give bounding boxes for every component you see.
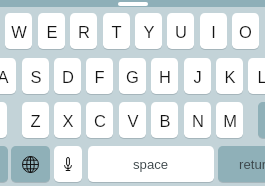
staticText: V <box>127 112 139 130</box>
staticText: D <box>62 68 74 86</box>
button[interactable]: Shift <box>0 102 7 138</box>
button[interactable]: E <box>38 13 65 49</box>
staticText: U <box>175 23 187 41</box>
staticText: F <box>94 68 105 86</box>
staticText: O <box>239 23 252 41</box>
staticText: X <box>62 112 74 130</box>
button[interactable]: Y <box>135 13 162 49</box>
button[interactable]: N <box>184 102 211 138</box>
button[interactable]: T <box>103 13 130 49</box>
button[interactable]: I <box>200 13 227 49</box>
button[interactable]: Numbers <box>0 146 8 182</box>
staticText: R <box>78 23 90 41</box>
button[interactable]: F <box>86 58 113 94</box>
button[interactable]: C <box>86 102 113 138</box>
button[interactable]: Z <box>22 102 49 138</box>
staticText: space <box>133 157 169 172</box>
staticText: T <box>111 23 122 41</box>
button[interactable]: B <box>151 102 178 138</box>
staticText: Z <box>30 112 41 130</box>
staticText: I <box>211 23 216 41</box>
staticText: E <box>46 23 58 41</box>
staticText: G <box>126 68 139 86</box>
staticText: C <box>94 112 106 130</box>
button[interactable]: W <box>5 13 32 49</box>
button[interactable]: S <box>22 58 49 94</box>
button[interactable]: Backspace <box>258 102 265 138</box>
button[interactable]: D <box>54 58 81 94</box>
staticText: J <box>193 68 202 86</box>
button[interactable]: U <box>167 13 194 49</box>
button[interactable]: A <box>0 58 16 94</box>
button[interactable]: space <box>88 146 214 182</box>
button[interactable]: G <box>119 58 146 94</box>
staticText: return <box>239 157 265 172</box>
staticText: L <box>257 68 265 86</box>
button[interactable]: K <box>216 58 243 94</box>
button[interactable]: J <box>184 58 211 94</box>
staticText: K <box>224 68 236 86</box>
staticText: H <box>159 68 171 86</box>
button[interactable]: H <box>151 58 178 94</box>
staticText: A <box>0 68 9 86</box>
staticText: W <box>11 23 27 41</box>
button[interactable]: Change keyboard <box>11 146 50 182</box>
button[interactable]: R <box>70 13 97 49</box>
button[interactable]: M <box>216 102 243 138</box>
staticText: M <box>223 112 237 130</box>
button[interactable]: O <box>232 13 259 49</box>
staticText: B <box>159 112 171 130</box>
button[interactable]: X <box>54 102 81 138</box>
button[interactable]: L <box>248 58 265 94</box>
staticText: N <box>192 112 204 130</box>
staticText: S <box>30 68 42 86</box>
button[interactable]: return <box>218 146 265 182</box>
button[interactable]: V <box>119 102 146 138</box>
staticText: Y <box>143 23 155 41</box>
button[interactable]: Dictation <box>54 146 82 182</box>
